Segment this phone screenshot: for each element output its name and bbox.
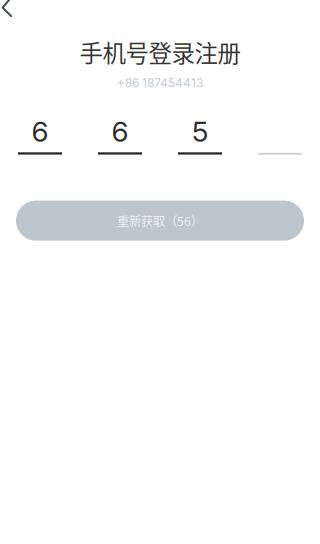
staticText: 重新获取（56） bbox=[117, 212, 203, 229]
staticText: 6 bbox=[111, 115, 128, 149]
button[interactable]: Back bbox=[0, 0, 36, 30]
button[interactable]: Code digit 5 bbox=[178, 119, 222, 155]
staticText: 6 bbox=[31, 115, 48, 149]
button[interactable]: 重新获取（56） bbox=[16, 201, 304, 241]
button[interactable]: Empty code digit bbox=[258, 119, 302, 155]
button[interactable]: Code digit 6 bbox=[98, 119, 142, 155]
staticText: 手机号登录注册 bbox=[79, 35, 240, 69]
staticText: +86 187454413 bbox=[117, 76, 203, 90]
button[interactable]: Code digit 6 bbox=[18, 119, 62, 155]
staticText: 5 bbox=[192, 115, 208, 149]
